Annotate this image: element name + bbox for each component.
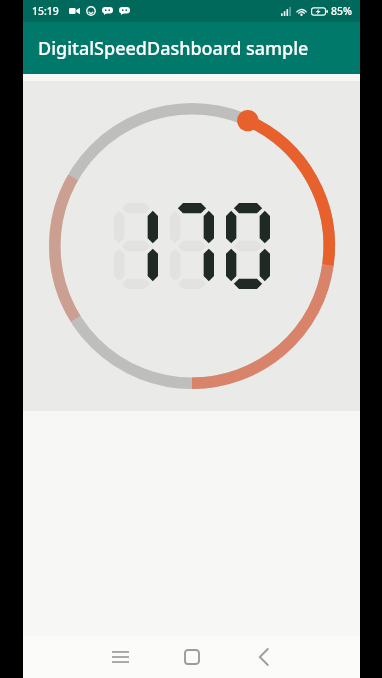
- button[interactable]: Back: [228, 636, 300, 678]
- staticText: DigitalSpeedDashboard sample: [38, 36, 309, 61]
- staticText: 85%: [331, 4, 352, 18]
- button[interactable]: Home: [156, 636, 228, 678]
- staticText: 15:19: [32, 4, 59, 18]
- button[interactable]: Recent apps: [84, 636, 156, 678]
